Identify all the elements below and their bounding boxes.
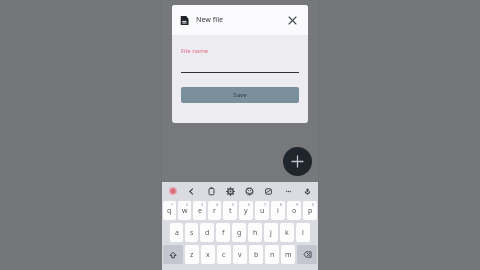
staticText: f [222,228,225,238]
button[interactable]: c [217,245,231,264]
button[interactable]: Back [184,184,198,198]
button[interactable]: x [201,245,215,264]
staticText: v [238,250,242,260]
staticText: File name [181,47,209,55]
staticText: 4 [216,202,219,207]
staticText: y [244,206,248,216]
staticText: w [182,206,188,216]
button[interactable]: g [232,223,246,242]
staticText: 9 [296,202,299,207]
button[interactable]: f [216,223,230,242]
staticText: n [270,250,275,260]
button[interactable]: Backspace [297,245,317,264]
staticText: x [206,250,210,260]
button[interactable]: 3 [193,201,206,220]
button[interactable]: Emoji [242,184,256,198]
button[interactable]: Google [166,184,179,197]
button[interactable]: Voice input [300,184,314,198]
staticText: z [190,250,194,260]
button[interactable]: 1 [163,201,176,220]
button[interactable]: Save [181,87,299,103]
button[interactable]: Add [283,147,312,176]
button[interactable]: 0 [303,201,317,220]
button[interactable]: Settings [223,184,237,198]
staticText: 6 [248,202,251,207]
button[interactable]: 4 [208,201,221,220]
button[interactable]: Close [284,12,300,28]
staticText: 8 [280,202,283,207]
button[interactable]: 7 [255,201,269,220]
staticText: g [237,228,242,238]
button[interactable]: Shift [163,245,183,264]
button[interactable]: b [249,245,263,264]
staticText: j [270,228,272,238]
button[interactable]: m [281,245,295,264]
staticText: r [213,206,216,216]
staticText: New file [196,15,224,25]
staticText: Save [233,91,247,99]
button[interactable]: k [280,223,294,242]
button[interactable]: l [296,223,310,242]
button[interactable]: More options [281,184,295,198]
staticText: q [167,206,172,216]
button[interactable]: Clipboard [204,184,218,198]
button[interactable]: a [170,223,183,242]
button[interactable]: d [200,223,214,242]
button[interactable]: s [185,223,198,242]
staticText: d [205,228,210,238]
staticText: 5 [232,202,235,207]
button[interactable]: h [248,223,262,242]
staticText: 7 [264,202,267,207]
staticText: e [198,206,202,216]
staticText: m [285,250,292,260]
button[interactable]: 6 [239,201,253,220]
staticText: 2 [186,202,189,207]
staticText: 3 [201,202,204,207]
staticText: b [254,250,259,260]
staticText: o [292,206,297,216]
staticText: 0 [312,202,315,207]
staticText: p [308,206,313,216]
staticText: u [260,206,265,216]
staticText: s [190,228,194,238]
staticText: h [253,228,258,238]
button[interactable]: 8 [271,201,285,220]
staticText: 1 [171,202,174,207]
button[interactable]: 2 [178,201,191,220]
staticText: a [175,228,179,238]
button[interactable]: 9 [287,201,301,220]
staticText: t [229,206,232,216]
staticText: l [302,228,304,238]
button[interactable]: v [233,245,247,264]
staticText: c [222,250,226,260]
button[interactable]: 5 [223,201,237,220]
button[interactable]: Translate [261,184,275,198]
button[interactable]: j [264,223,278,242]
button[interactable]: z [185,245,199,264]
staticText: k [285,228,289,238]
staticText: i [277,206,279,216]
button[interactable]: n [265,245,279,264]
